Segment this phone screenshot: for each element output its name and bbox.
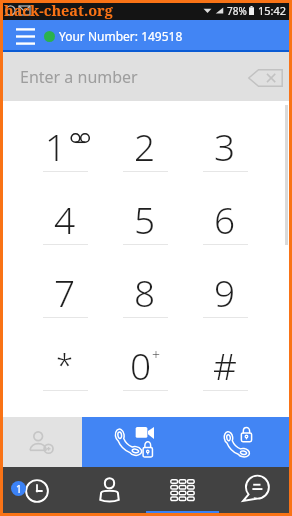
staticText: 8 (134, 267, 156, 317)
button[interactable]: 1 (25, 99, 105, 172)
staticText: 3 (214, 121, 236, 171)
staticText: 0 (130, 340, 152, 390)
staticText: # (213, 340, 237, 390)
button[interactable]: Messages (219, 467, 292, 516)
button[interactable]: 8 (105, 245, 185, 318)
staticText: 5 (134, 194, 156, 244)
button[interactable]: Keypad (146, 467, 219, 516)
button[interactable]: * (25, 318, 105, 391)
button[interactable]: Add contact (0, 417, 82, 467)
button[interactable]: 5 (105, 172, 185, 245)
staticText: 7 (54, 267, 76, 317)
staticText: 1 (16, 482, 22, 496)
staticText: 2 (134, 121, 156, 171)
button[interactable]: 2 (105, 99, 185, 172)
button[interactable]: Menu (6, 20, 44, 52)
staticText: 4 (54, 194, 76, 244)
button[interactable]: 9 (185, 245, 265, 318)
button[interactable]: Recents (0, 467, 73, 516)
button[interactable]: 3 (185, 99, 265, 172)
button[interactable]: Secure video call (82, 417, 187, 467)
staticText: Enter a number (20, 66, 138, 88)
button[interactable]: # (185, 318, 265, 391)
button[interactable]: Secure call (187, 417, 292, 467)
staticText: + (152, 345, 160, 364)
button[interactable]: 6 (185, 172, 265, 245)
button[interactable]: 7 (25, 245, 105, 318)
staticText: 78% (227, 4, 247, 18)
button[interactable]: 4 (25, 172, 105, 245)
button[interactable]: Backspace (243, 60, 287, 94)
button[interactable]: 0 (105, 318, 185, 391)
staticText: hack-cheat.org (4, 0, 113, 20)
staticText: * (56, 343, 74, 385)
button[interactable]: Contacts (73, 467, 146, 516)
staticText: 6 (214, 194, 236, 244)
staticText: 15:42 (258, 3, 287, 18)
staticText: 9 (214, 267, 236, 317)
staticText: 1 (45, 121, 67, 171)
staticText: Your Number: 149518 (59, 28, 183, 44)
